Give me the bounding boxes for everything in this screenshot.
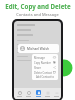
staticText: Message bbox=[34, 56, 45, 60]
button[interactable]: Michael Walsh bbox=[18, 44, 59, 53]
button[interactable]: Keypad bbox=[43, 88, 51, 99]
button[interactable]: Share bbox=[32, 65, 58, 70]
button[interactable]: Favorites bbox=[24, 88, 32, 99]
staticText: Edit, Copy and Delete bbox=[5, 2, 71, 10]
staticText: Contacts and Message bbox=[16, 12, 59, 17]
staticText: Copy Number bbox=[34, 61, 51, 65]
staticText: Michael Walsh bbox=[27, 47, 49, 51]
button[interactable]: Recents bbox=[15, 88, 23, 99]
button[interactable]: Copy Number bbox=[32, 60, 58, 65]
staticText: Add Contact to Group bbox=[34, 75, 56, 79]
button[interactable]: Delete Contact bbox=[32, 70, 58, 75]
button[interactable]: More bbox=[52, 88, 60, 99]
button[interactable]: Add Contact to Group bbox=[32, 75, 58, 79]
button[interactable]: Message bbox=[32, 55, 58, 60]
staticText: Share bbox=[34, 66, 41, 70]
staticText: Delete Contact bbox=[34, 71, 52, 75]
button[interactable]: Contacts bbox=[34, 88, 42, 99]
